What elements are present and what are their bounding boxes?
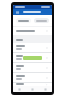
- button[interactable]: Menu: [15, 10, 19, 14]
- button[interactable]: [16, 18, 31, 23]
- button[interactable]: [13, 63, 52, 73]
- button[interactable]: [13, 53, 52, 63]
- button[interactable]: [13, 83, 52, 86]
- button[interactable]: Search: [26, 86, 39, 92]
- button[interactable]: [13, 27, 52, 35]
- button[interactable]: [34, 18, 49, 23]
- button[interactable]: [13, 73, 52, 83]
- button[interactable]: Profile: [39, 86, 52, 92]
- button[interactable]: Home: [13, 86, 26, 92]
- button[interactable]: [13, 43, 52, 53]
